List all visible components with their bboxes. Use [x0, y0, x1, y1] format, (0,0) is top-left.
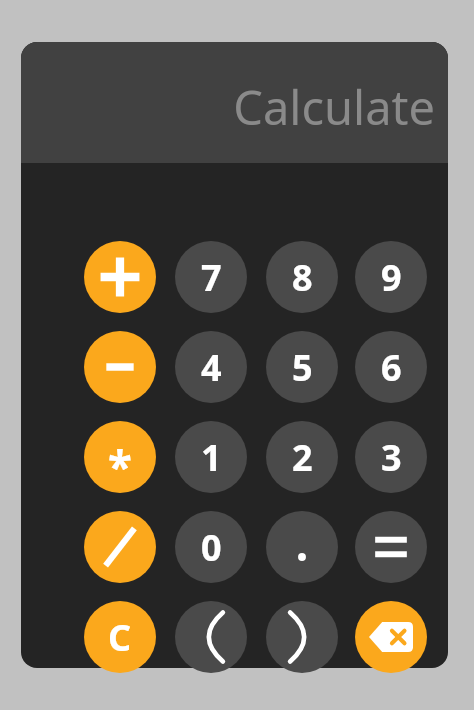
staticText: 5: [292, 343, 313, 392]
button[interactable]: 2: [266, 421, 338, 493]
staticText: 3: [381, 433, 402, 482]
staticText: 4: [201, 343, 222, 392]
button[interactable]: 4: [175, 331, 247, 403]
button[interactable]: 8: [266, 241, 338, 313]
button[interactable]: 3: [355, 421, 427, 493]
button[interactable]: C: [84, 601, 156, 673]
button[interactable]: Decimal point: [266, 511, 338, 583]
button[interactable]: 5: [266, 331, 338, 403]
staticText: Calculate: [233, 75, 435, 139]
button[interactable]: Minus: [84, 331, 156, 403]
button[interactable]: 9: [355, 241, 427, 313]
staticText: *: [108, 436, 132, 493]
button[interactable]: Close parenthesis: [266, 601, 338, 673]
staticText: 7: [201, 253, 222, 302]
button[interactable]: Open parenthesis: [175, 601, 247, 673]
staticText: 2: [292, 433, 313, 482]
staticText: 6: [381, 343, 402, 392]
button[interactable]: 0: [175, 511, 247, 583]
staticText: 9: [381, 253, 402, 302]
button[interactable]: Backspace: [355, 601, 427, 673]
staticText: 0: [201, 523, 222, 572]
button[interactable]: Plus: [84, 241, 156, 313]
button[interactable]: 6: [355, 331, 427, 403]
staticText: 8: [292, 253, 313, 302]
button[interactable]: Divide: [84, 511, 156, 583]
staticText: C: [108, 613, 132, 662]
button[interactable]: 7: [175, 241, 247, 313]
button[interactable]: Equals: [355, 511, 427, 583]
staticText: 1: [201, 433, 222, 482]
button[interactable]: *: [84, 421, 156, 493]
button[interactable]: 1: [175, 421, 247, 493]
